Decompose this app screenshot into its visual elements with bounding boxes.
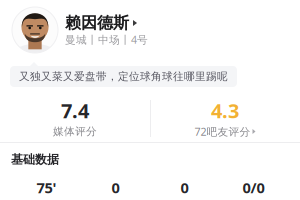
staticText: 0/0 <box>242 177 264 197</box>
button[interactable]: 4.3 <box>150 101 300 139</box>
staticText: 7.4 <box>61 97 89 124</box>
staticText: 72吧友评分 <box>194 124 250 139</box>
button[interactable]: 赖因德斯 <box>12 7 300 53</box>
staticText: 媒体评分 <box>53 125 97 138</box>
staticText: 75' <box>36 177 56 197</box>
staticText: 4.3 <box>211 97 239 124</box>
staticText: 基础数据 <box>11 152 59 167</box>
staticText: 0 <box>111 177 119 197</box>
staticText: 0 <box>180 177 188 197</box>
staticText: 曼城丨中场丨4号 <box>65 32 148 47</box>
staticText: 又独又菜又爱盘带，定位球角球往哪里踢呢 <box>19 70 228 83</box>
staticText: 赖因德斯 <box>65 13 129 33</box>
